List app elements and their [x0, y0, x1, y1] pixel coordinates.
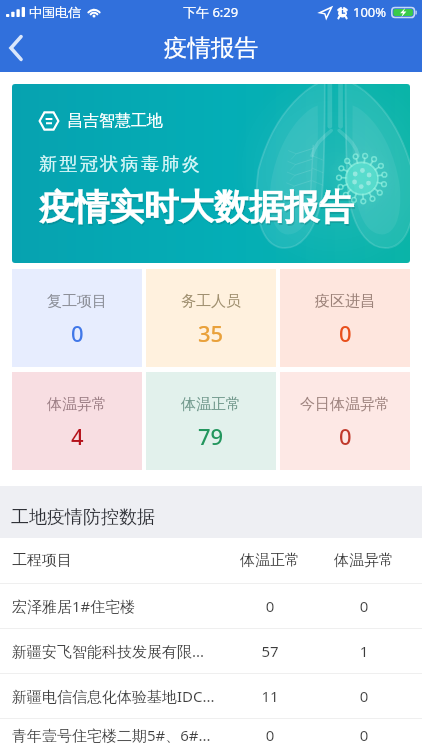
staticText: 35: [198, 318, 224, 348]
button[interactable]: 复工项目: [12, 269, 142, 367]
staticText: 79: [198, 421, 224, 451]
button[interactable]: 疫区进昌: [280, 269, 410, 367]
staticText: 疫情实时大数据报告: [39, 185, 354, 229]
staticText: 中国电信: [29, 4, 81, 20]
button[interactable]: 新疆安飞智能科技发展有限...: [0, 629, 422, 673]
staticText: 新疆电信信息化体验基地IDC...: [12, 686, 234, 706]
staticText: 务工人员: [181, 292, 241, 311]
staticText: 0: [328, 596, 400, 616]
button[interactable]: 务工人员: [146, 269, 276, 367]
staticText: 0: [339, 318, 352, 348]
staticText: 11: [234, 686, 306, 706]
staticText: 0: [339, 421, 352, 451]
button[interactable]: 宏泽雅居1#住宅楼: [0, 584, 422, 628]
staticText: 工地疫情防控数据: [11, 506, 155, 529]
staticText: 57: [234, 641, 306, 661]
staticText: 青年壹号住宅楼二期5#、6#...: [12, 725, 234, 745]
button[interactable]: 新疆电信信息化体验基地IDC...: [0, 674, 422, 718]
staticText: 1: [328, 641, 400, 661]
button[interactable]: 青年壹号住宅楼二期5#、6#...: [0, 719, 422, 750]
staticText: 体温异常: [47, 395, 107, 414]
staticText: 工程项目: [12, 551, 234, 570]
staticText: 体温正常: [181, 395, 241, 414]
staticText: 0: [234, 596, 306, 616]
staticText: 4: [71, 421, 84, 451]
staticText: 疫区进昌: [315, 292, 375, 311]
staticText: 昌吉智慧工地: [67, 111, 163, 131]
staticText: 100%: [353, 3, 387, 21]
staticText: 0: [328, 725, 400, 745]
staticText: 新疆安飞智能科技发展有限...: [12, 641, 234, 661]
button[interactable]: 体温正常: [146, 372, 276, 470]
staticText: 0: [71, 318, 84, 348]
button[interactable]: 体温异常: [12, 372, 142, 470]
staticText: 宏泽雅居1#住宅楼: [12, 596, 234, 616]
staticText: 新型冠状病毒肺炎: [39, 153, 203, 176]
button[interactable]: Back: [0, 24, 42, 72]
staticText: 体温正常: [234, 551, 306, 570]
staticText: 疫情报告: [164, 33, 258, 63]
staticText: 体温异常: [328, 551, 400, 570]
staticText: 复工项目: [47, 292, 107, 311]
staticText: 0: [234, 725, 306, 745]
staticText: 0: [328, 686, 400, 706]
button[interactable]: 今日体温异常: [280, 372, 410, 470]
staticText: 疫情实时大数据报告: [40, 187, 355, 231]
staticText: 今日体温异常: [300, 395, 390, 414]
staticText: 下午 6:29: [183, 3, 239, 21]
